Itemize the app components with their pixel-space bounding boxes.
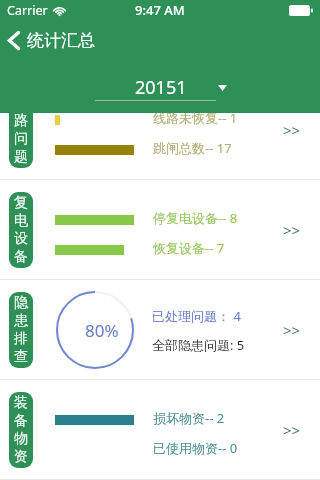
staticText: 复 bbox=[14, 194, 28, 212]
button[interactable]: Back bbox=[0, 27, 95, 53]
staticText: 设 bbox=[14, 230, 28, 248]
staticText: 排 bbox=[14, 330, 28, 348]
staticText: 损坏物资-- 2 bbox=[153, 409, 225, 427]
staticText: 统计汇总 bbox=[27, 30, 95, 51]
staticText: 已使用物资-- 0 bbox=[153, 439, 238, 457]
staticText: 全部隐患问题: 5 bbox=[152, 336, 245, 354]
staticText: 停复电设备-- 8 bbox=[153, 209, 238, 227]
other: Back bbox=[0, 27, 27, 53]
staticText: 问 bbox=[14, 130, 28, 148]
staticText: 20151 bbox=[135, 75, 187, 100]
staticText: 患 bbox=[14, 312, 28, 330]
staticText: 已处理问题： 4 bbox=[152, 307, 241, 325]
staticText: 80% bbox=[85, 319, 119, 342]
staticText: 物 bbox=[14, 430, 28, 448]
staticText: >> bbox=[283, 120, 301, 140]
staticText: 装 bbox=[14, 394, 28, 412]
staticText: 线路未恢复-- 1 bbox=[153, 109, 238, 127]
staticText: 资 bbox=[14, 448, 28, 466]
staticText: 路 bbox=[14, 112, 28, 130]
staticText: 备 bbox=[14, 248, 28, 266]
button[interactable]: 复 bbox=[0, 180, 320, 280]
button[interactable]: 线 bbox=[0, 80, 320, 180]
staticText: >> bbox=[283, 420, 301, 440]
staticText: 跳闸总数-- 17 bbox=[153, 139, 232, 157]
staticText: 查 bbox=[14, 348, 28, 366]
staticText: 隐 bbox=[14, 294, 28, 312]
staticText: 电 bbox=[14, 212, 28, 230]
button[interactable]: 装 bbox=[0, 380, 320, 480]
staticText: 备 bbox=[14, 412, 28, 430]
staticText: >> bbox=[283, 220, 301, 240]
staticText: >> bbox=[283, 320, 301, 340]
button[interactable]: 20151 bbox=[95, 75, 228, 102]
staticText: 恢复设备-- 7 bbox=[153, 239, 225, 257]
staticText: 题 bbox=[14, 148, 28, 166]
staticText: Carrier bbox=[7, 2, 48, 19]
button[interactable]: 隐 bbox=[0, 280, 320, 380]
staticText: 9:47 AM bbox=[135, 1, 185, 19]
